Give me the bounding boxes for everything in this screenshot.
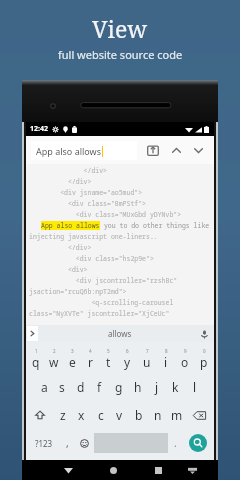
staticText: h	[134, 379, 142, 395]
staticText: g	[115, 379, 123, 395]
button[interactable]: 9	[175, 345, 194, 373]
button[interactable]: b	[129, 401, 148, 429]
staticText: injecting javascript one-liners..	[29, 232, 158, 241]
button[interactable]: z	[53, 401, 72, 429]
staticText: <div class="MUxGbd yDYNvb">	[29, 210, 182, 219]
button[interactable]: f	[90, 373, 109, 401]
staticText: q	[32, 354, 40, 370]
staticText: ?123	[35, 438, 53, 449]
button[interactable]: c	[91, 401, 110, 429]
staticText: 5	[107, 348, 110, 354]
staticText: App also allows	[36, 145, 101, 157]
staticText: c	[98, 407, 104, 423]
button[interactable]: m	[167, 401, 186, 429]
button[interactable]: App also allows	[31, 141, 137, 160]
staticText: u	[143, 354, 151, 370]
staticText: o	[181, 354, 189, 370]
button[interactable]: j	[147, 373, 166, 401]
staticText: full website source code	[58, 47, 183, 62]
button[interactable]: Export source	[143, 140, 163, 160]
staticText: 0	[203, 348, 206, 354]
staticText: b	[135, 407, 143, 423]
staticText: allows	[108, 328, 132, 339]
button[interactable]: v	[110, 401, 129, 429]
staticText: </div>	[29, 166, 108, 175]
button[interactable]: Search	[189, 434, 207, 452]
button[interactable]: Recents	[146, 460, 171, 480]
staticText: y	[124, 354, 131, 370]
button[interactable]: Emoji	[75, 429, 94, 457]
button[interactable]: x	[72, 401, 91, 429]
staticText: <div class="hs2p9e">	[29, 254, 154, 263]
button[interactable]: More suggestions	[27, 326, 38, 341]
staticText: x	[78, 407, 85, 423]
staticText: <div jsname="ao5mud">	[29, 188, 143, 197]
staticText: p	[200, 354, 208, 370]
staticText: 6	[126, 348, 129, 354]
staticText: class="NyXVTe" jscontroller="XjCeUc"	[29, 309, 170, 318]
staticText: 2	[53, 348, 56, 354]
staticText: s	[59, 379, 65, 395]
button[interactable]: s	[53, 373, 71, 401]
button[interactable]: 0	[194, 345, 213, 373]
button[interactable]: 3	[63, 345, 81, 373]
button[interactable]: ?123	[27, 429, 60, 457]
staticText: .	[174, 436, 177, 450]
staticText: App also allows	[41, 221, 100, 230]
staticText: w	[49, 354, 59, 370]
button[interactable]: Voice input	[198, 328, 210, 340]
button[interactable]: 6	[118, 345, 137, 373]
staticText: n	[154, 407, 162, 423]
button[interactable]: Home	[101, 460, 126, 480]
button[interactable]: Shift	[27, 401, 53, 429]
button[interactable]: l	[185, 373, 204, 401]
staticText: j	[155, 379, 159, 395]
button[interactable]: a	[35, 373, 53, 401]
staticText: a	[41, 379, 48, 395]
button[interactable]: Back	[56, 460, 81, 480]
button[interactable]: Next match	[189, 141, 207, 159]
staticText: k	[172, 379, 179, 395]
button[interactable]: 7	[137, 345, 156, 373]
staticText: t	[106, 354, 111, 370]
button[interactable]: .	[168, 429, 183, 457]
staticText: ,	[66, 436, 69, 450]
staticText: 12:42	[30, 124, 48, 134]
staticText: <q-scrolling-carousel jsname="kVgvCc"	[29, 298, 211, 307]
button[interactable]: 2	[45, 345, 63, 373]
button[interactable]: 4	[81, 345, 99, 373]
staticText: </div>	[29, 177, 92, 186]
staticText: l	[193, 379, 197, 395]
button[interactable]: h	[128, 373, 147, 401]
staticText: 4	[89, 348, 92, 354]
button[interactable]: 8	[156, 345, 175, 373]
staticText: m	[171, 407, 183, 423]
staticText: 8	[165, 348, 168, 354]
staticText: i	[164, 354, 168, 370]
button[interactable]: ,	[60, 429, 75, 457]
staticText: <div jscontroller="rzshBc"	[29, 276, 178, 285]
button[interactable]: 1	[27, 345, 45, 373]
button[interactable]: d	[71, 373, 90, 401]
staticText: 9	[184, 348, 187, 354]
staticText: 3	[71, 348, 74, 354]
button[interactable]: allows	[108, 328, 132, 339]
button[interactable]: Previous match	[167, 141, 185, 159]
staticText: 7	[146, 348, 149, 354]
staticText: <div>	[29, 265, 88, 274]
button[interactable]: n	[148, 401, 167, 429]
staticText: z	[60, 407, 66, 423]
staticText: you to do other things like	[100, 221, 210, 230]
staticText: e	[69, 354, 76, 370]
staticText: View	[92, 13, 148, 44]
button[interactable]: Hide keyboard	[180, 460, 205, 480]
button[interactable]: k	[166, 373, 185, 401]
button[interactable]: g	[109, 373, 128, 401]
staticText: v	[116, 407, 123, 423]
button[interactable]: 5	[99, 345, 118, 373]
staticText: jsaction="rcuQ6b:npT2md">	[29, 287, 127, 296]
staticText: f	[97, 379, 102, 395]
button[interactable]: Backspace	[186, 401, 213, 429]
